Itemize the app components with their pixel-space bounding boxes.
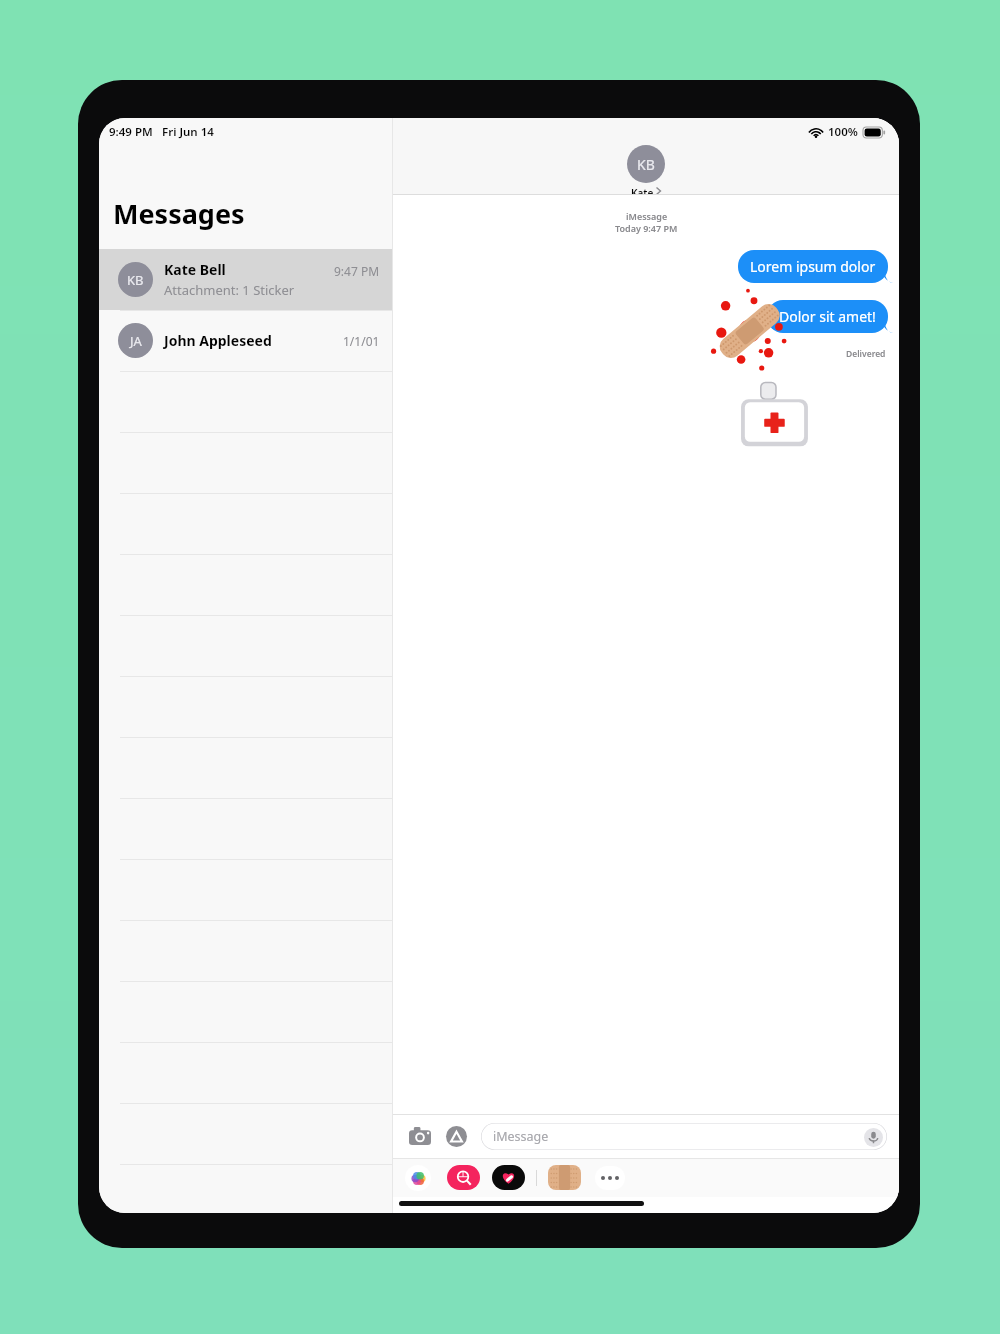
button[interactable]: Record audio xyxy=(863,1127,883,1147)
staticText: John Appleseed xyxy=(164,331,272,350)
staticText: 1/1/01 xyxy=(343,333,380,349)
staticText: Lorem ipsum dolor xyxy=(750,257,876,276)
staticText: Attachment: 1 Sticker xyxy=(164,281,295,299)
staticText: 9:49 PM xyxy=(109,124,153,140)
button[interactable]: JA xyxy=(99,310,392,371)
button[interactable]: KB xyxy=(99,249,392,310)
button[interactable]: Dolor sit amet! xyxy=(767,300,888,333)
staticText: Messages xyxy=(113,195,245,232)
button[interactable]: Camera xyxy=(405,1121,435,1151)
staticText: Today 9:47 PM xyxy=(615,222,678,234)
staticText: iMessage xyxy=(493,1128,549,1145)
staticText: Delivered xyxy=(846,348,886,360)
button[interactable]: More apps xyxy=(595,1166,625,1190)
button[interactable]: iMessage xyxy=(481,1123,887,1150)
button[interactable]: Photos xyxy=(405,1165,431,1191)
staticText: Fri Jun 14 xyxy=(162,124,214,140)
button[interactable]: Image search xyxy=(447,1165,480,1190)
button[interactable]: Digital Touch xyxy=(492,1165,525,1190)
staticText: Kate Bell xyxy=(164,260,226,279)
staticText: Kate xyxy=(631,186,654,195)
staticText: Dolor sit amet! xyxy=(779,307,876,326)
button[interactable]: Lorem ipsum dolor xyxy=(738,250,888,283)
staticText: KB xyxy=(127,271,144,289)
button[interactable]: App Store xyxy=(441,1121,471,1151)
staticText: iMessage xyxy=(626,210,668,222)
staticText: KB xyxy=(637,155,655,174)
staticText: JA xyxy=(130,332,142,350)
staticText: 100% xyxy=(828,124,858,140)
button[interactable]: KB xyxy=(627,145,665,195)
staticText: 9:47 PM xyxy=(334,263,380,279)
button[interactable]: Bandage stickers xyxy=(548,1165,581,1190)
